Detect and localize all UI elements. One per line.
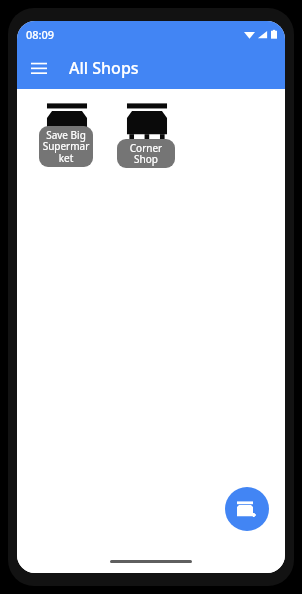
button[interactable]: Save Big Supermarket	[39, 99, 93, 171]
staticText: Corner Shop	[120, 141, 172, 166]
button[interactable]: Open navigation menu	[21, 50, 57, 86]
button[interactable]: Add shop	[225, 487, 269, 531]
staticText: Save Big Supermarket	[42, 128, 90, 165]
staticText: All Shops	[69, 57, 139, 79]
staticText: 08:09	[26, 27, 55, 42]
button[interactable]: Corner Shop	[117, 99, 175, 171]
